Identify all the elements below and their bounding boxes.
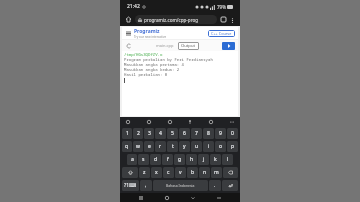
staticText: l — [227, 156, 229, 163]
staticText: /tmp/HGs3QDfZV.o — [124, 52, 163, 57]
button[interactable]: m — [211, 167, 222, 178]
button[interactable]: Voice input — [186, 118, 194, 126]
button[interactable]: programiz.com/cpp-prog — [135, 15, 217, 24]
staticText: Program perkalian by Feri Ferdiansyah — [124, 57, 213, 62]
staticText: r — [159, 143, 162, 150]
button[interactable]: 1 — [122, 128, 132, 139]
staticText: Hasil perkalian: 8 — [124, 72, 168, 77]
button[interactable]: h — [186, 154, 197, 165]
staticText: , — [145, 182, 147, 189]
button[interactable]: C++ Course — [208, 30, 235, 37]
staticText: c — [167, 169, 170, 176]
button[interactable]: y — [179, 141, 190, 152]
button[interactable]: f — [162, 154, 173, 165]
button[interactable]: t — [167, 141, 178, 152]
staticText: n — [203, 169, 207, 176]
button[interactable]: Bahasa Indonesia — [153, 180, 208, 191]
button[interactable]: Home — [124, 15, 133, 24]
button[interactable]: l — [222, 154, 233, 165]
button[interactable]: . — [209, 180, 221, 191]
button[interactable]: i — [203, 141, 214, 152]
button[interactable]: 4 — [155, 128, 166, 139]
staticText: 6 — [183, 130, 186, 137]
button[interactable]: main.cpp — [154, 42, 176, 49]
staticText: x — [155, 169, 158, 176]
button[interactable]: , — [140, 180, 152, 191]
button[interactable]: n — [199, 167, 210, 178]
staticText: 7 — [195, 130, 198, 137]
button[interactable]: k — [210, 154, 221, 165]
staticText: 21:42 — [127, 3, 140, 10]
staticText: Programiz — [134, 28, 160, 35]
button[interactable]: s — [138, 154, 149, 165]
button[interactable]: u — [191, 141, 202, 152]
staticText: main.cpp — [156, 43, 174, 48]
button[interactable]: e — [144, 141, 154, 152]
button[interactable]: a — [127, 154, 137, 165]
button[interactable]: More options — [228, 16, 236, 24]
button[interactable]: 2 — [133, 128, 143, 139]
button[interactable]: 8 — [203, 128, 214, 139]
button[interactable]: x — [151, 167, 162, 178]
button[interactable]: Recents — [136, 193, 146, 202]
staticText: w — [136, 143, 140, 150]
button[interactable]: v — [175, 167, 186, 178]
button[interactable]: r — [155, 141, 166, 152]
staticText: k — [214, 156, 217, 163]
button[interactable]: 7 — [191, 128, 202, 139]
button[interactable]: Emoji — [124, 118, 132, 126]
staticText: v — [179, 169, 182, 176]
button[interactable]: b — [187, 167, 198, 178]
button[interactable]: c — [163, 167, 174, 178]
staticText: 0 — [231, 130, 234, 137]
button[interactable]: g — [174, 154, 185, 165]
staticText: d — [154, 156, 158, 163]
button[interactable]: w — [133, 141, 143, 152]
staticText: 2 — [137, 130, 140, 137]
button[interactable]: 9 — [215, 128, 226, 139]
button[interactable]: o — [215, 141, 226, 152]
staticText: q — [125, 143, 129, 150]
button[interactable]: p — [227, 141, 238, 152]
button[interactable]: 0 — [227, 128, 238, 139]
button[interactable]: Back — [188, 193, 198, 202]
button[interactable]: Tabs — [219, 15, 228, 24]
staticText: Try our new interactive — [134, 35, 167, 39]
button[interactable]: Run — [222, 42, 235, 50]
staticText: C++ Course — [211, 31, 232, 36]
button[interactable]: 5 — [167, 128, 178, 139]
staticText: 8 — [207, 130, 210, 137]
staticText: z — [143, 169, 146, 176]
staticText: 79% — [217, 4, 226, 10]
button[interactable]: Settings — [207, 118, 215, 126]
staticText: p — [231, 143, 235, 150]
button[interactable]: 3 — [144, 128, 154, 139]
button[interactable]: Menu — [125, 30, 132, 37]
button[interactable]: Shift — [122, 167, 138, 178]
staticText: h — [190, 156, 194, 163]
staticText: u — [195, 143, 199, 150]
button[interactable]: d — [150, 154, 161, 165]
staticText: Output — [181, 43, 196, 49]
button[interactable]: Output — [178, 42, 199, 50]
staticText: t — [172, 143, 174, 150]
staticText: Bahasa Indonesia — [166, 183, 195, 188]
button[interactable]: q — [122, 141, 132, 152]
button[interactable]: z — [139, 167, 150, 178]
button[interactable]: ?1⌨ — [122, 180, 139, 191]
staticText: 5 — [171, 130, 174, 137]
staticText: i — [208, 143, 210, 150]
button[interactable]: GIF — [166, 118, 174, 126]
staticText: Masukkan angka kedua: 2 — [124, 67, 180, 72]
button[interactable]: Backspace — [223, 167, 238, 178]
staticText: m — [214, 169, 219, 176]
staticText: a — [131, 156, 134, 163]
button[interactable]: More — [228, 118, 236, 126]
button[interactable]: Clipboard — [145, 118, 153, 126]
button[interactable]: Enter — [222, 180, 238, 191]
button[interactable]: Hide keyboard — [214, 193, 224, 202]
button[interactable]: 6 — [179, 128, 190, 139]
button[interactable]: j — [198, 154, 209, 165]
button[interactable]: Home — [162, 193, 172, 202]
button[interactable]: Reset — [125, 42, 132, 49]
